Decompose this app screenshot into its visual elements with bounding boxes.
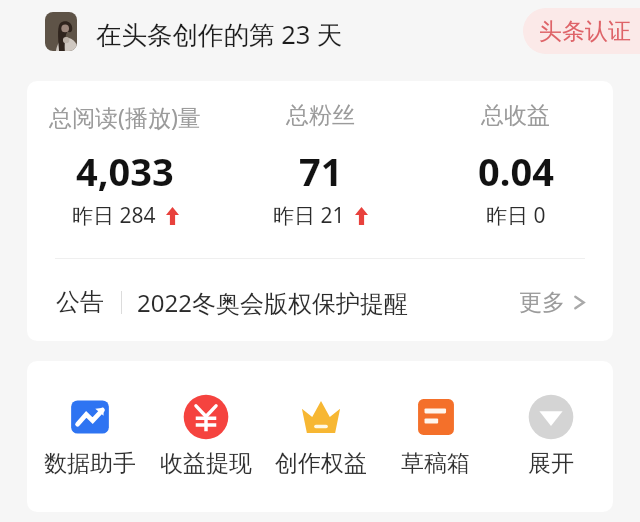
staticText: 昨日 0	[486, 201, 546, 230]
button[interactable]: 创作权益	[263, 361, 378, 512]
button[interactable]: 数据助手	[32, 361, 148, 512]
staticText: 公告	[56, 287, 104, 317]
button[interactable]: 展开	[493, 361, 608, 512]
staticText: 创作权益	[275, 449, 367, 478]
staticText: 数据助手	[44, 449, 136, 478]
staticText: 草稿箱	[401, 449, 470, 478]
staticText: 更多	[519, 288, 565, 317]
staticText: 在头条创作的第 23 天	[96, 17, 343, 52]
button[interactable]: 草稿箱	[378, 361, 493, 512]
button[interactable]: 收益提现	[148, 361, 263, 512]
staticText: 总收益	[481, 101, 550, 130]
button[interactable]: 头条认证	[523, 8, 640, 54]
staticText: 71	[299, 145, 343, 197]
staticText: 0.04	[478, 145, 554, 197]
button[interactable]: 公告	[27, 261, 613, 341]
staticText: 4,033	[76, 145, 174, 197]
staticText: 昨日 284	[72, 201, 156, 230]
staticText: 展开	[528, 449, 574, 478]
staticText: 总阅读(播放)量	[49, 101, 201, 132]
staticText: 2022冬奥会版权保护提醒	[137, 286, 408, 319]
staticText: 收益提现	[160, 449, 252, 478]
staticText: 头条认证	[539, 17, 631, 46]
staticText: 总粉丝	[286, 101, 355, 130]
staticText: 昨日 21	[273, 201, 345, 230]
